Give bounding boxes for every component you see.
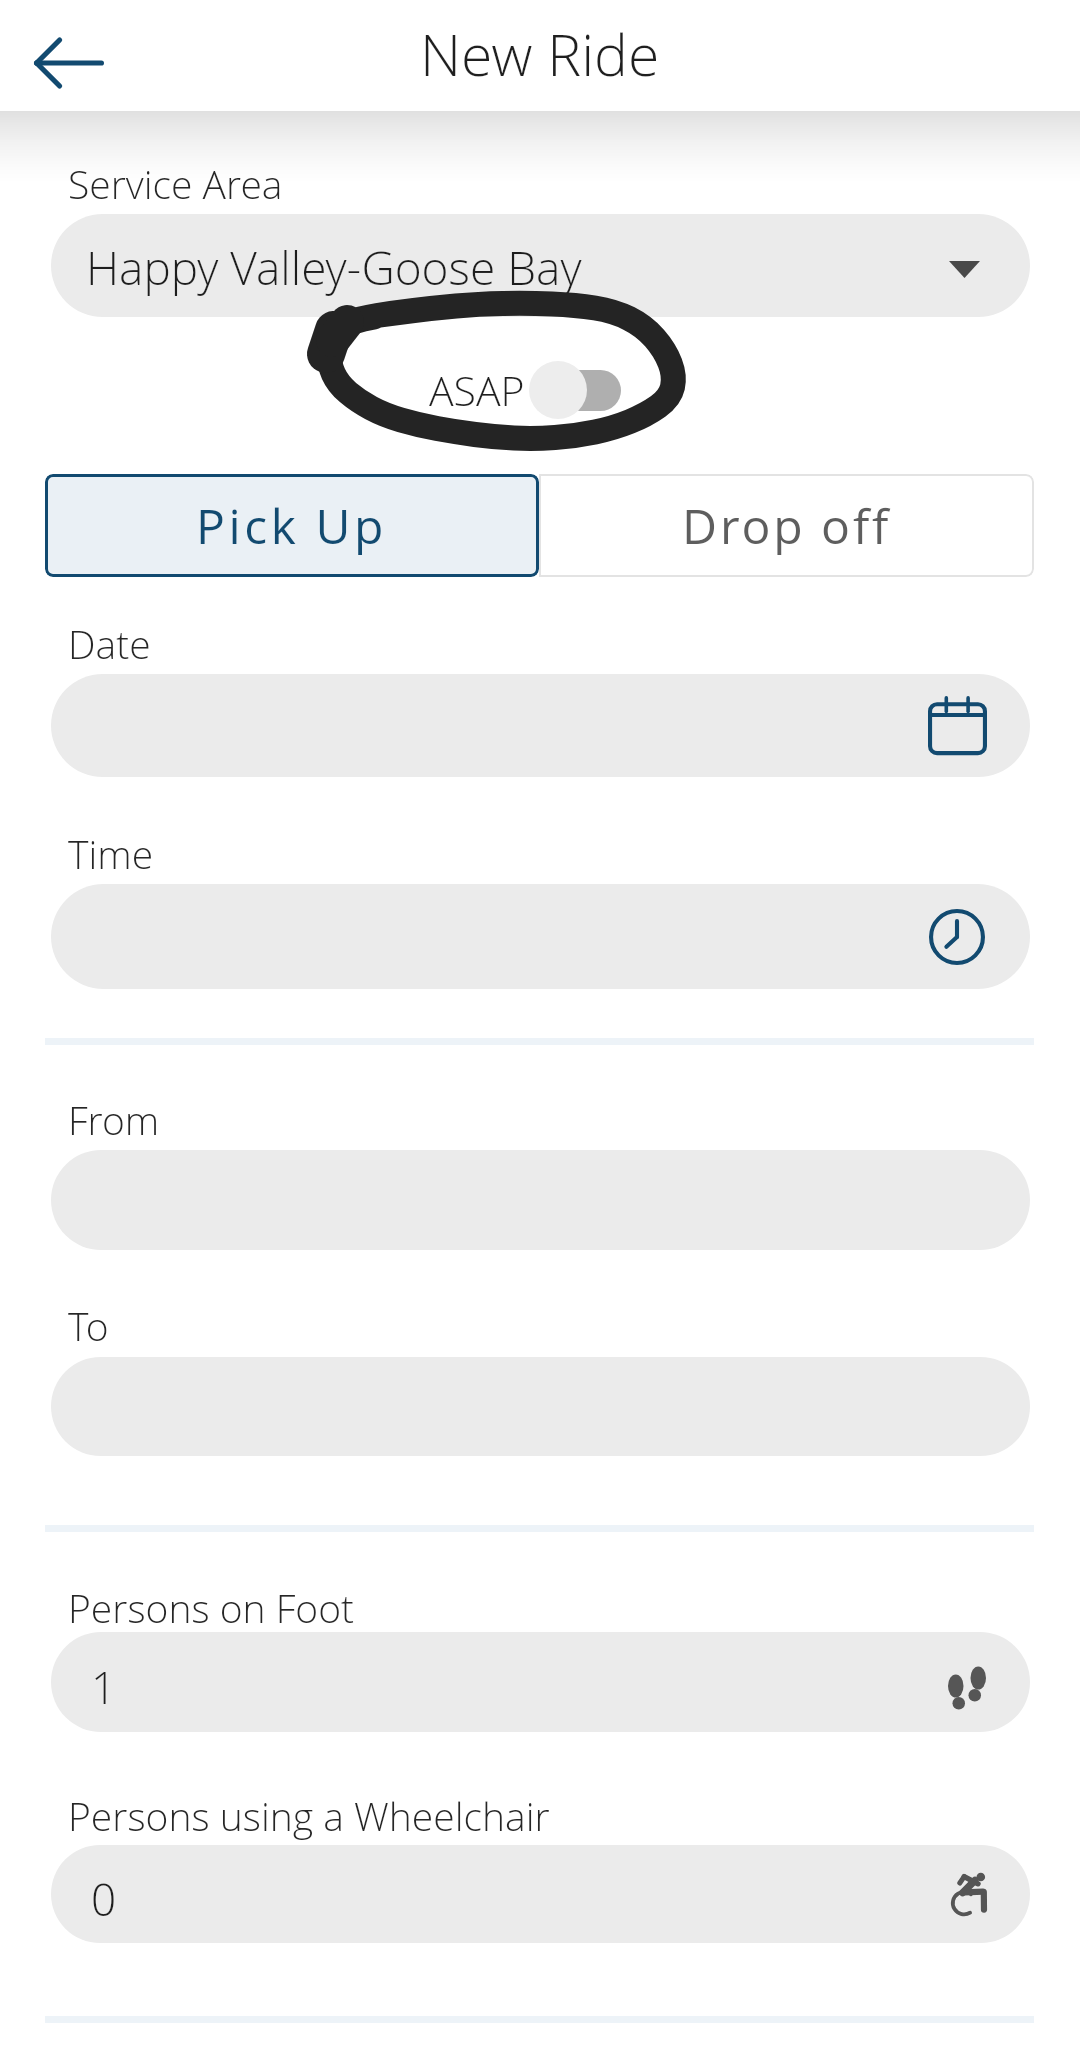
button[interactable]: Persons using a Wheelchair xyxy=(51,1845,1030,1943)
button[interactable]: Drop off xyxy=(539,474,1034,577)
staticText: Happy Valley-Goose Bay xyxy=(86,236,582,299)
staticText: Date xyxy=(68,617,151,670)
staticText: Persons using a Wheelchair xyxy=(68,1789,550,1842)
staticText: From xyxy=(68,1093,160,1146)
staticText: 1 xyxy=(91,1657,117,1717)
button[interactable]: Persons on Foot xyxy=(51,1632,1030,1732)
button[interactable]: ASAP xyxy=(420,358,630,422)
staticText: ASAP xyxy=(429,362,525,418)
button[interactable]: Time xyxy=(51,884,1030,989)
staticText: Pick Up xyxy=(196,493,388,558)
button[interactable]: Back xyxy=(19,13,119,113)
staticText: Time xyxy=(68,827,154,880)
staticText: Service Area xyxy=(68,157,283,210)
staticText: Drop off xyxy=(682,493,892,558)
staticText: Persons on Foot xyxy=(68,1581,355,1634)
staticText: New Ride xyxy=(420,15,660,93)
staticText: To xyxy=(68,1299,109,1352)
button[interactable]: Date xyxy=(51,674,1030,777)
button[interactable]: Service Area dropdown xyxy=(51,214,1030,317)
staticText: 0 xyxy=(91,1869,117,1929)
button[interactable]: Pick Up xyxy=(45,474,539,577)
